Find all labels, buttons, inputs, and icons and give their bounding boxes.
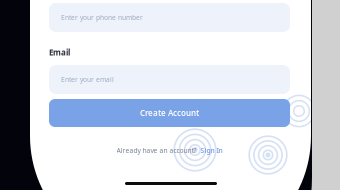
staticText: Enter your email: [61, 75, 114, 84]
staticText: Enter your phone number: [61, 13, 143, 22]
staticText: Sign In: [200, 146, 222, 155]
staticText: Email: [49, 47, 70, 58]
staticText: Create Account: [140, 108, 199, 118]
button[interactable]: Create Account: [49, 99, 290, 127]
staticText: Already have an account?: [116, 146, 196, 155]
button[interactable]: Sign In: [200, 146, 222, 155]
